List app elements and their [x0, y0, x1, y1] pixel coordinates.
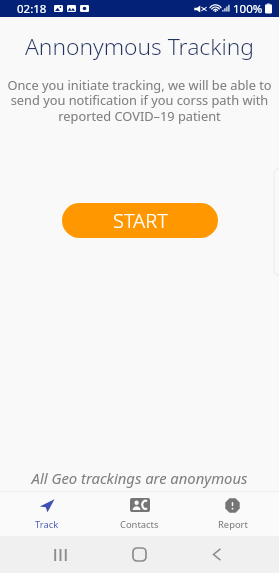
staticText: 02:18 — [17, 1, 47, 17]
button[interactable]: Back — [196, 536, 238, 573]
button[interactable]: Report — [186, 492, 279, 536]
button[interactable]: START — [62, 203, 218, 238]
button[interactable]: Recents — [39, 536, 81, 573]
button[interactable]: Home — [118, 536, 160, 573]
staticText: Contacts — [120, 518, 159, 531]
staticText: START — [113, 207, 168, 234]
button[interactable]: Contacts — [93, 492, 186, 536]
staticText: 100% — [233, 1, 263, 17]
staticText: Report — [218, 518, 248, 531]
staticText: All Geo trackings are anonymous — [0, 468, 279, 488]
staticText: Once you initiate tracking, we will be a… — [4, 76, 275, 125]
staticText: Track — [35, 518, 59, 531]
button[interactable]: Track — [0, 492, 93, 536]
staticText: Annonymous Tracking — [25, 31, 254, 62]
